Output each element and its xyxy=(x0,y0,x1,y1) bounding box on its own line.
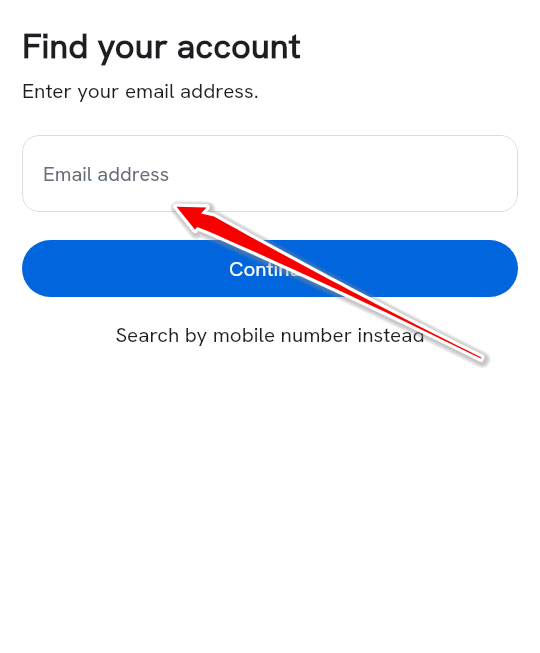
staticText: Email address xyxy=(43,161,170,187)
staticText: Find your account xyxy=(22,23,301,68)
staticText: Enter your email address. xyxy=(22,77,259,104)
button[interactable]: Search by mobile number instead xyxy=(105,317,435,352)
button[interactable]: Email address xyxy=(22,135,518,212)
staticText: Continue xyxy=(229,255,312,282)
button[interactable]: Continue xyxy=(22,240,518,297)
